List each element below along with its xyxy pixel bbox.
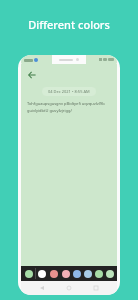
button[interactable]: Color 6 bbox=[93, 266, 104, 281]
staticText: Different colors bbox=[28, 17, 110, 32]
button[interactable]: Recent apps bbox=[90, 282, 102, 294]
button[interactable]: Color 1 bbox=[36, 266, 48, 281]
button[interactable]: Color 7 bbox=[104, 266, 115, 281]
button[interactable]: Color 2 bbox=[48, 266, 60, 281]
button[interactable]: Color 0 bbox=[23, 266, 35, 281]
staticText: 04 Dec 2021 • 8:55 AM bbox=[48, 89, 90, 94]
staticText: guivlyidbtU guvyIvjrigg/ bbox=[27, 108, 72, 113]
button[interactable]: Back bbox=[25, 68, 39, 82]
button[interactable]: Navigate back bbox=[36, 282, 48, 294]
button[interactable]: Home bbox=[63, 282, 75, 294]
button[interactable]: 04 Dec 2021 • 8:55 AM bbox=[42, 87, 96, 96]
button[interactable]: Color 4 bbox=[71, 266, 82, 281]
staticText: Tohfguaupsgusgnv pBidtyefi uqvquvlvl9b bbox=[27, 101, 105, 106]
button[interactable]: Color 3 bbox=[60, 266, 71, 281]
button[interactable]: Color 5 bbox=[82, 266, 93, 281]
